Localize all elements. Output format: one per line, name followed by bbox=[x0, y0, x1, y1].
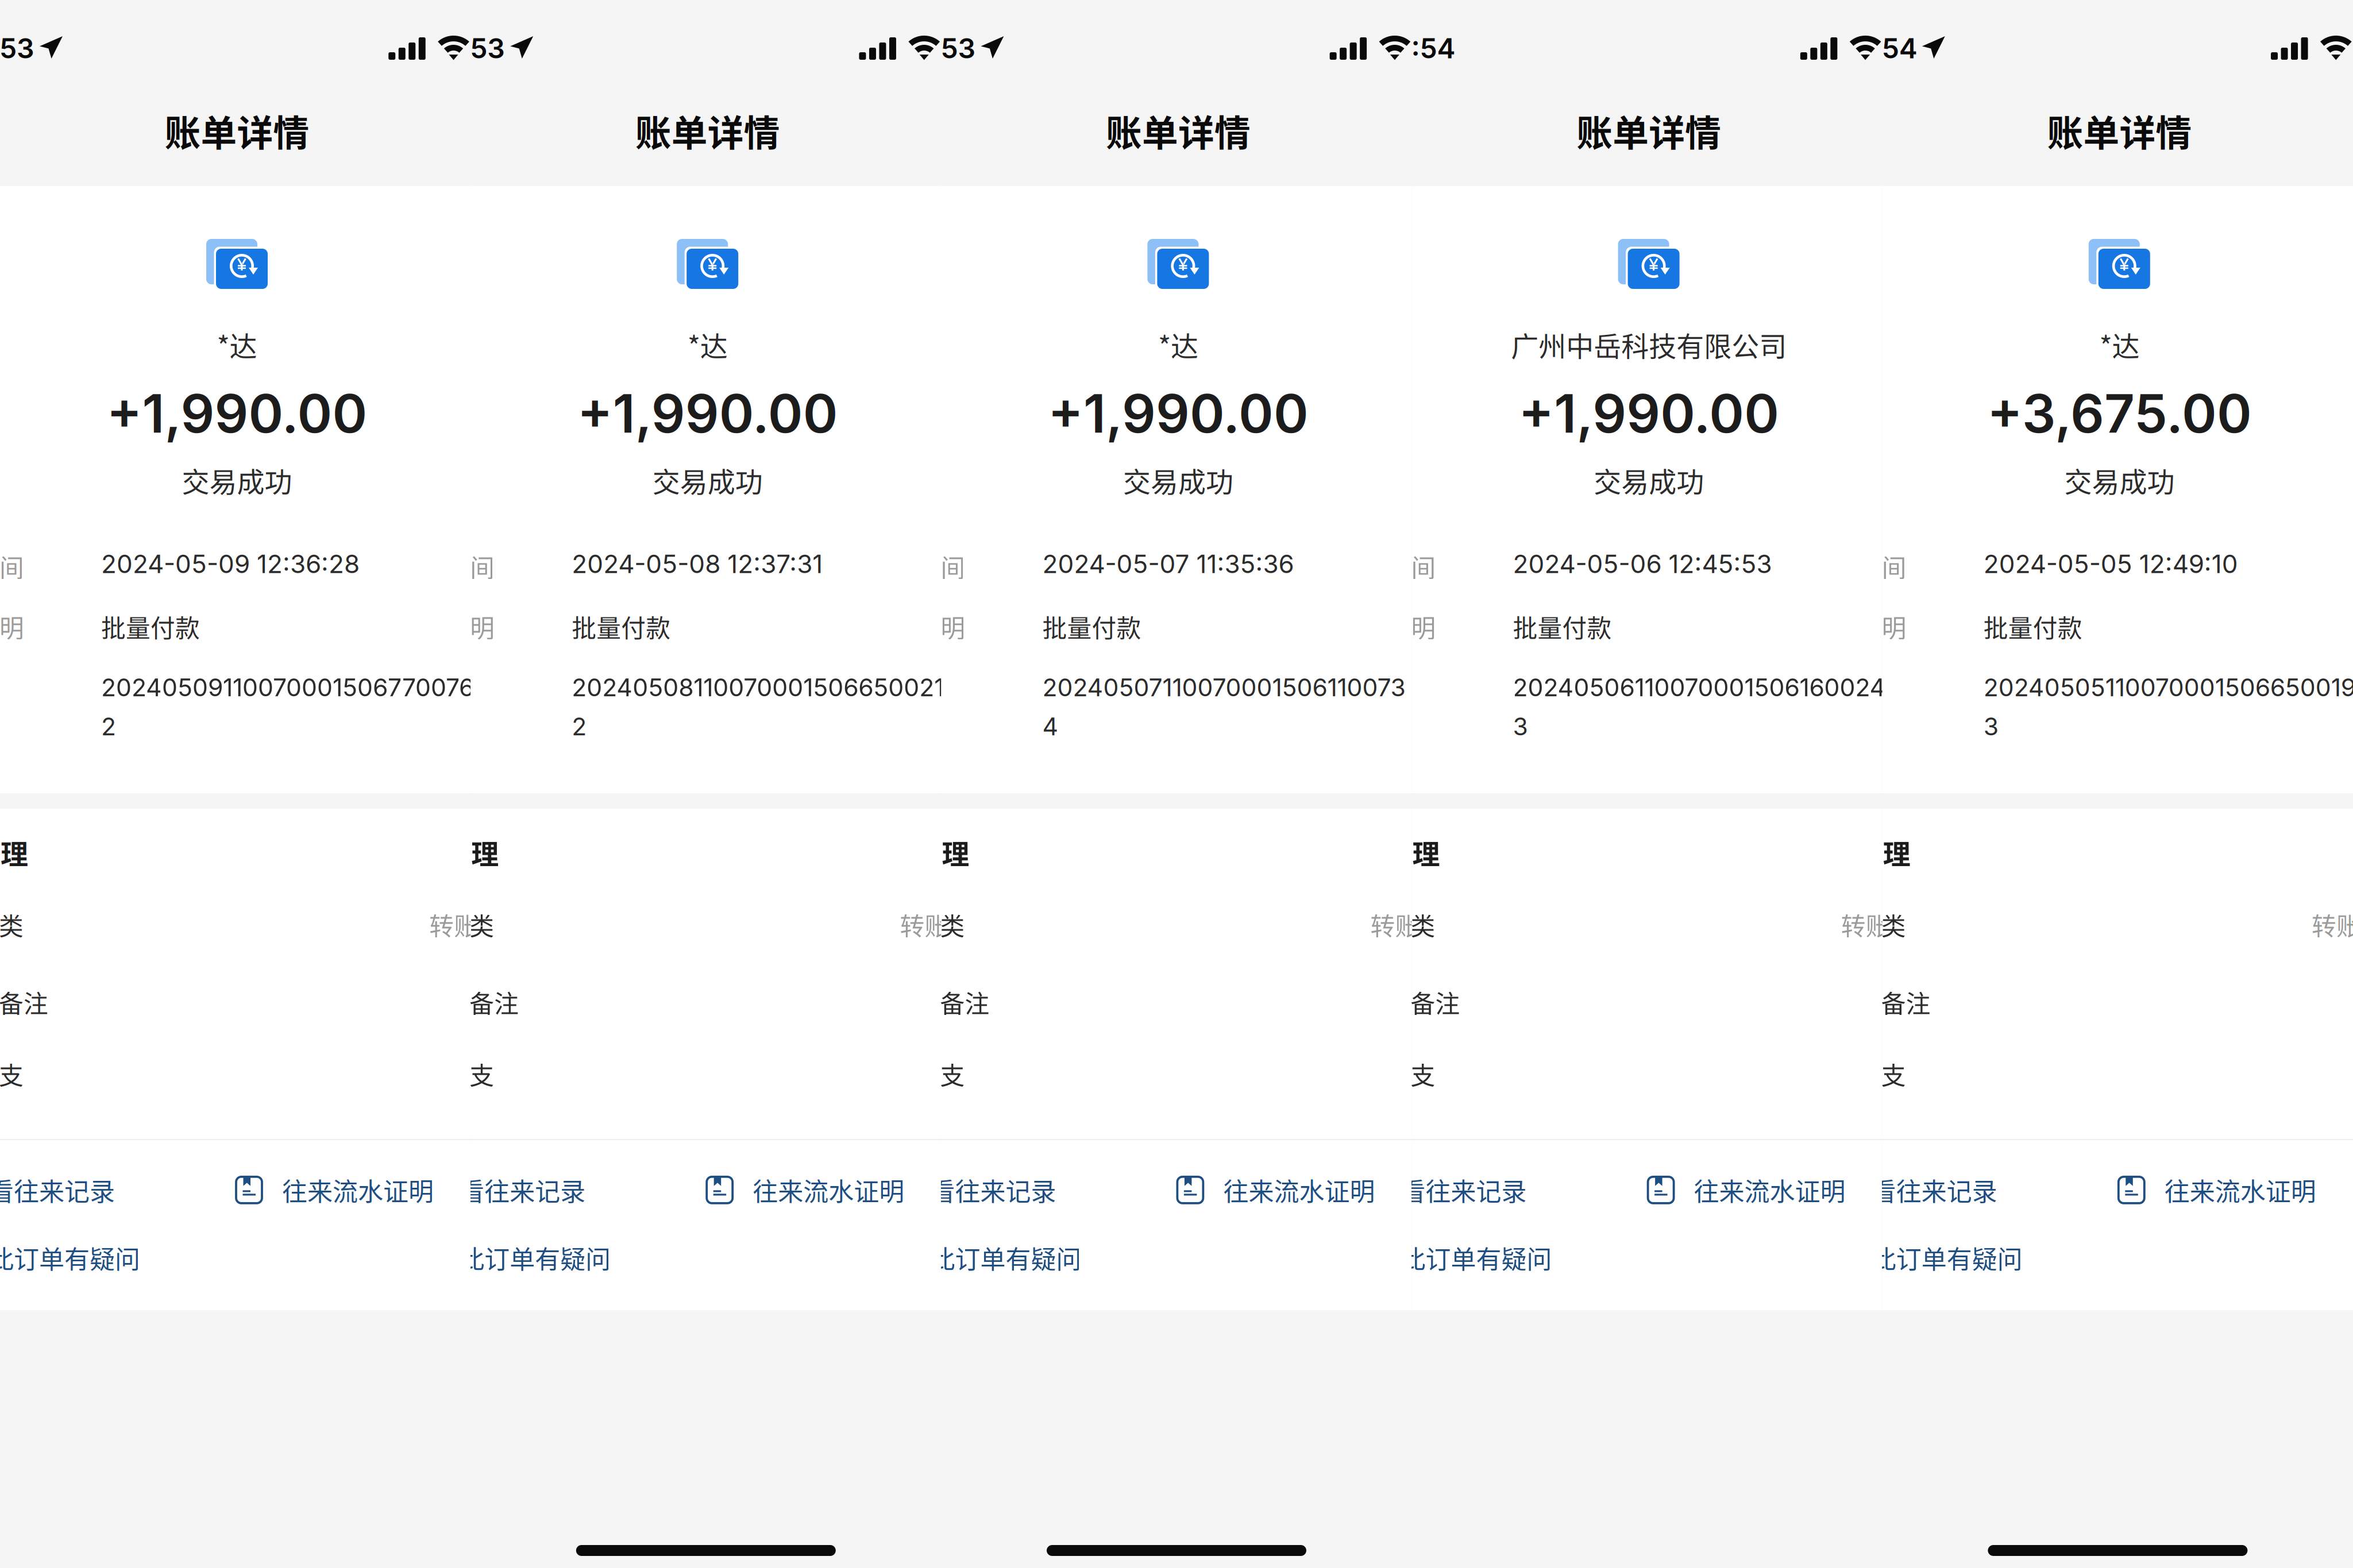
staticText: 查看往来记录 bbox=[1846, 1172, 1997, 1208]
staticText: 转账 bbox=[2312, 907, 2353, 942]
staticText: 交易说明 bbox=[396, 609, 495, 644]
staticText: 2024-05-05 12:49:10 bbox=[1984, 549, 2238, 579]
staticText: 分类 bbox=[0, 907, 24, 942]
staticText: 往来流水证明 bbox=[282, 1172, 434, 1208]
staticText: 2024-05-07 11:35:36 bbox=[1042, 549, 1294, 579]
staticText: 账单详情 bbox=[1106, 104, 1251, 156]
staticText: 批量付款 bbox=[1513, 609, 1612, 644]
staticText: 备注 bbox=[0, 984, 48, 1020]
staticText: 账单详情 bbox=[635, 104, 780, 156]
staticText: 广州中岳科技有限公司 bbox=[1511, 325, 1787, 364]
staticText: 交易成功 bbox=[1123, 460, 1233, 500]
staticText: 20240506110070001506160024 bbox=[1513, 673, 1886, 702]
staticText: 交易说明 bbox=[1808, 609, 1907, 644]
staticText: 分类 bbox=[445, 907, 494, 942]
staticText: 查看往来记录 bbox=[434, 1172, 585, 1208]
staticText: 往来流水证明 bbox=[1694, 1172, 1846, 1208]
staticText: 账单详情 bbox=[165, 104, 309, 156]
staticText: 往来流水证明 bbox=[753, 1172, 904, 1208]
staticText: 批量付款 bbox=[101, 609, 200, 644]
staticText: 收支 bbox=[0, 1056, 24, 1092]
staticText: 交易时间 bbox=[0, 549, 24, 584]
staticText: 收支 bbox=[445, 1056, 494, 1092]
staticText: 53 bbox=[470, 32, 505, 65]
staticText: 收支管理 bbox=[0, 832, 28, 872]
staticText: 交易时间 bbox=[396, 549, 495, 584]
staticText: +1,990.00 bbox=[1048, 381, 1309, 445]
staticText: 20240505110070001506650019 bbox=[1984, 673, 2353, 702]
staticText: 54 bbox=[1882, 32, 1917, 65]
staticText: 交易成功 bbox=[652, 460, 763, 500]
staticText: 备注 bbox=[940, 984, 989, 1020]
staticText: 交易时间 bbox=[1337, 549, 1436, 584]
staticText: +3,675.00 bbox=[1987, 381, 2252, 445]
staticText: 交易成功 bbox=[182, 460, 292, 500]
staticText: 批量付款 bbox=[1984, 609, 2082, 644]
staticText: 交易成功 bbox=[2064, 460, 2175, 500]
staticText: 2024-05-08 12:37:31 bbox=[572, 549, 823, 579]
staticText: 交易说明 bbox=[0, 609, 24, 644]
staticText: *达 bbox=[217, 325, 257, 364]
staticText: 20240507110070001506110073 bbox=[1042, 673, 1405, 702]
staticText: 对此订单有疑问 bbox=[904, 1239, 1081, 1276]
staticText: 收支 bbox=[915, 1056, 965, 1092]
staticText: 转账 bbox=[1370, 907, 1420, 942]
staticText: 对此订单有疑问 bbox=[1846, 1239, 2023, 1276]
staticText: 收支管理 bbox=[388, 832, 499, 872]
staticText: 分类 bbox=[1386, 907, 1435, 942]
staticText: *达 bbox=[2099, 325, 2140, 364]
staticText: 分类 bbox=[915, 907, 965, 942]
staticText: 对此订单有疑问 bbox=[1375, 1239, 1552, 1276]
staticText: 53 bbox=[0, 32, 34, 65]
staticText: *达 bbox=[688, 325, 728, 364]
staticText: 备注 bbox=[1411, 984, 1460, 1020]
staticText: 交易成功 bbox=[1594, 460, 1704, 500]
staticText: 3 bbox=[1984, 712, 1998, 741]
staticText: 53 bbox=[941, 32, 976, 65]
staticText: 2024-05-09 12:36:28 bbox=[101, 549, 360, 579]
staticText: 账单详情 bbox=[1576, 104, 1721, 156]
staticText: 批量付款 bbox=[1042, 609, 1141, 644]
staticText: 交易时间 bbox=[867, 549, 965, 584]
staticText: 收支管理 bbox=[859, 832, 969, 872]
staticText: 4 bbox=[1042, 712, 1058, 741]
staticText: 对此订单有疑问 bbox=[434, 1239, 611, 1276]
staticText: 分类 bbox=[1857, 907, 1906, 942]
staticText: 交易说明 bbox=[867, 609, 965, 644]
staticText: 收支管理 bbox=[1800, 832, 1911, 872]
staticText: 收支 bbox=[1386, 1056, 1435, 1092]
staticText: 对此订单有疑问 bbox=[0, 1239, 140, 1276]
staticText: 查看往来记录 bbox=[904, 1172, 1056, 1208]
staticText: 备注 bbox=[1881, 984, 1931, 1020]
staticText: 3 bbox=[1513, 712, 1528, 741]
staticText: 查看往来记录 bbox=[0, 1172, 115, 1208]
staticText: 往来流水证明 bbox=[1223, 1172, 1375, 1208]
staticText: +1,990.00 bbox=[1518, 381, 1779, 445]
staticText: 转账 bbox=[900, 907, 949, 942]
staticText: 账单详情 bbox=[2047, 104, 2192, 156]
staticText: 2 bbox=[101, 712, 116, 741]
staticText: *达 bbox=[1158, 325, 1198, 364]
staticText: 批量付款 bbox=[572, 609, 671, 644]
staticText: 收支管理 bbox=[1330, 832, 1440, 872]
staticText: 收支 bbox=[1857, 1056, 1906, 1092]
staticText: :54 bbox=[1411, 32, 1455, 65]
staticText: 往来流水证明 bbox=[2164, 1172, 2316, 1208]
staticText: 备注 bbox=[469, 984, 519, 1020]
staticText: +1,990.00 bbox=[577, 381, 838, 445]
